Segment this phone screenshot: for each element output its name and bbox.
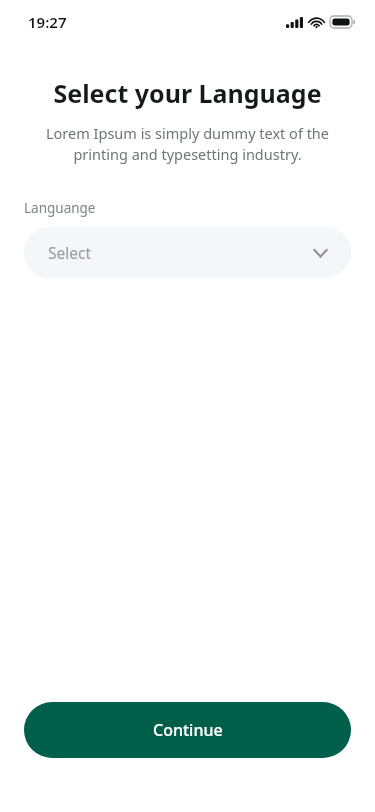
- staticText: 19:27: [28, 12, 67, 32]
- staticText: Continue: [153, 719, 223, 741]
- staticText: Select: [48, 242, 92, 263]
- button[interactable]: Continue: [24, 702, 351, 758]
- staticText: Select your Language: [0, 76, 375, 110]
- other: Open language list: [312, 248, 329, 258]
- button[interactable]: Select: [24, 227, 351, 278]
- staticText: Lorem Ipsum is simply dummy text of the …: [36, 123, 339, 165]
- staticText: Languange: [24, 199, 96, 217]
